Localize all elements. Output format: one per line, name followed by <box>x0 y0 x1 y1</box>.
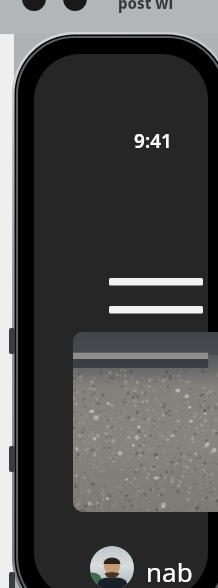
button[interactable]: Post photo <box>73 332 218 512</box>
staticText: nab <box>146 554 193 588</box>
button[interactable]: Open navigation menu <box>130 254 182 306</box>
staticText: post wi <box>118 0 174 13</box>
staticText: 9:41 <box>134 128 172 154</box>
button[interactable]: nab <box>90 546 218 588</box>
